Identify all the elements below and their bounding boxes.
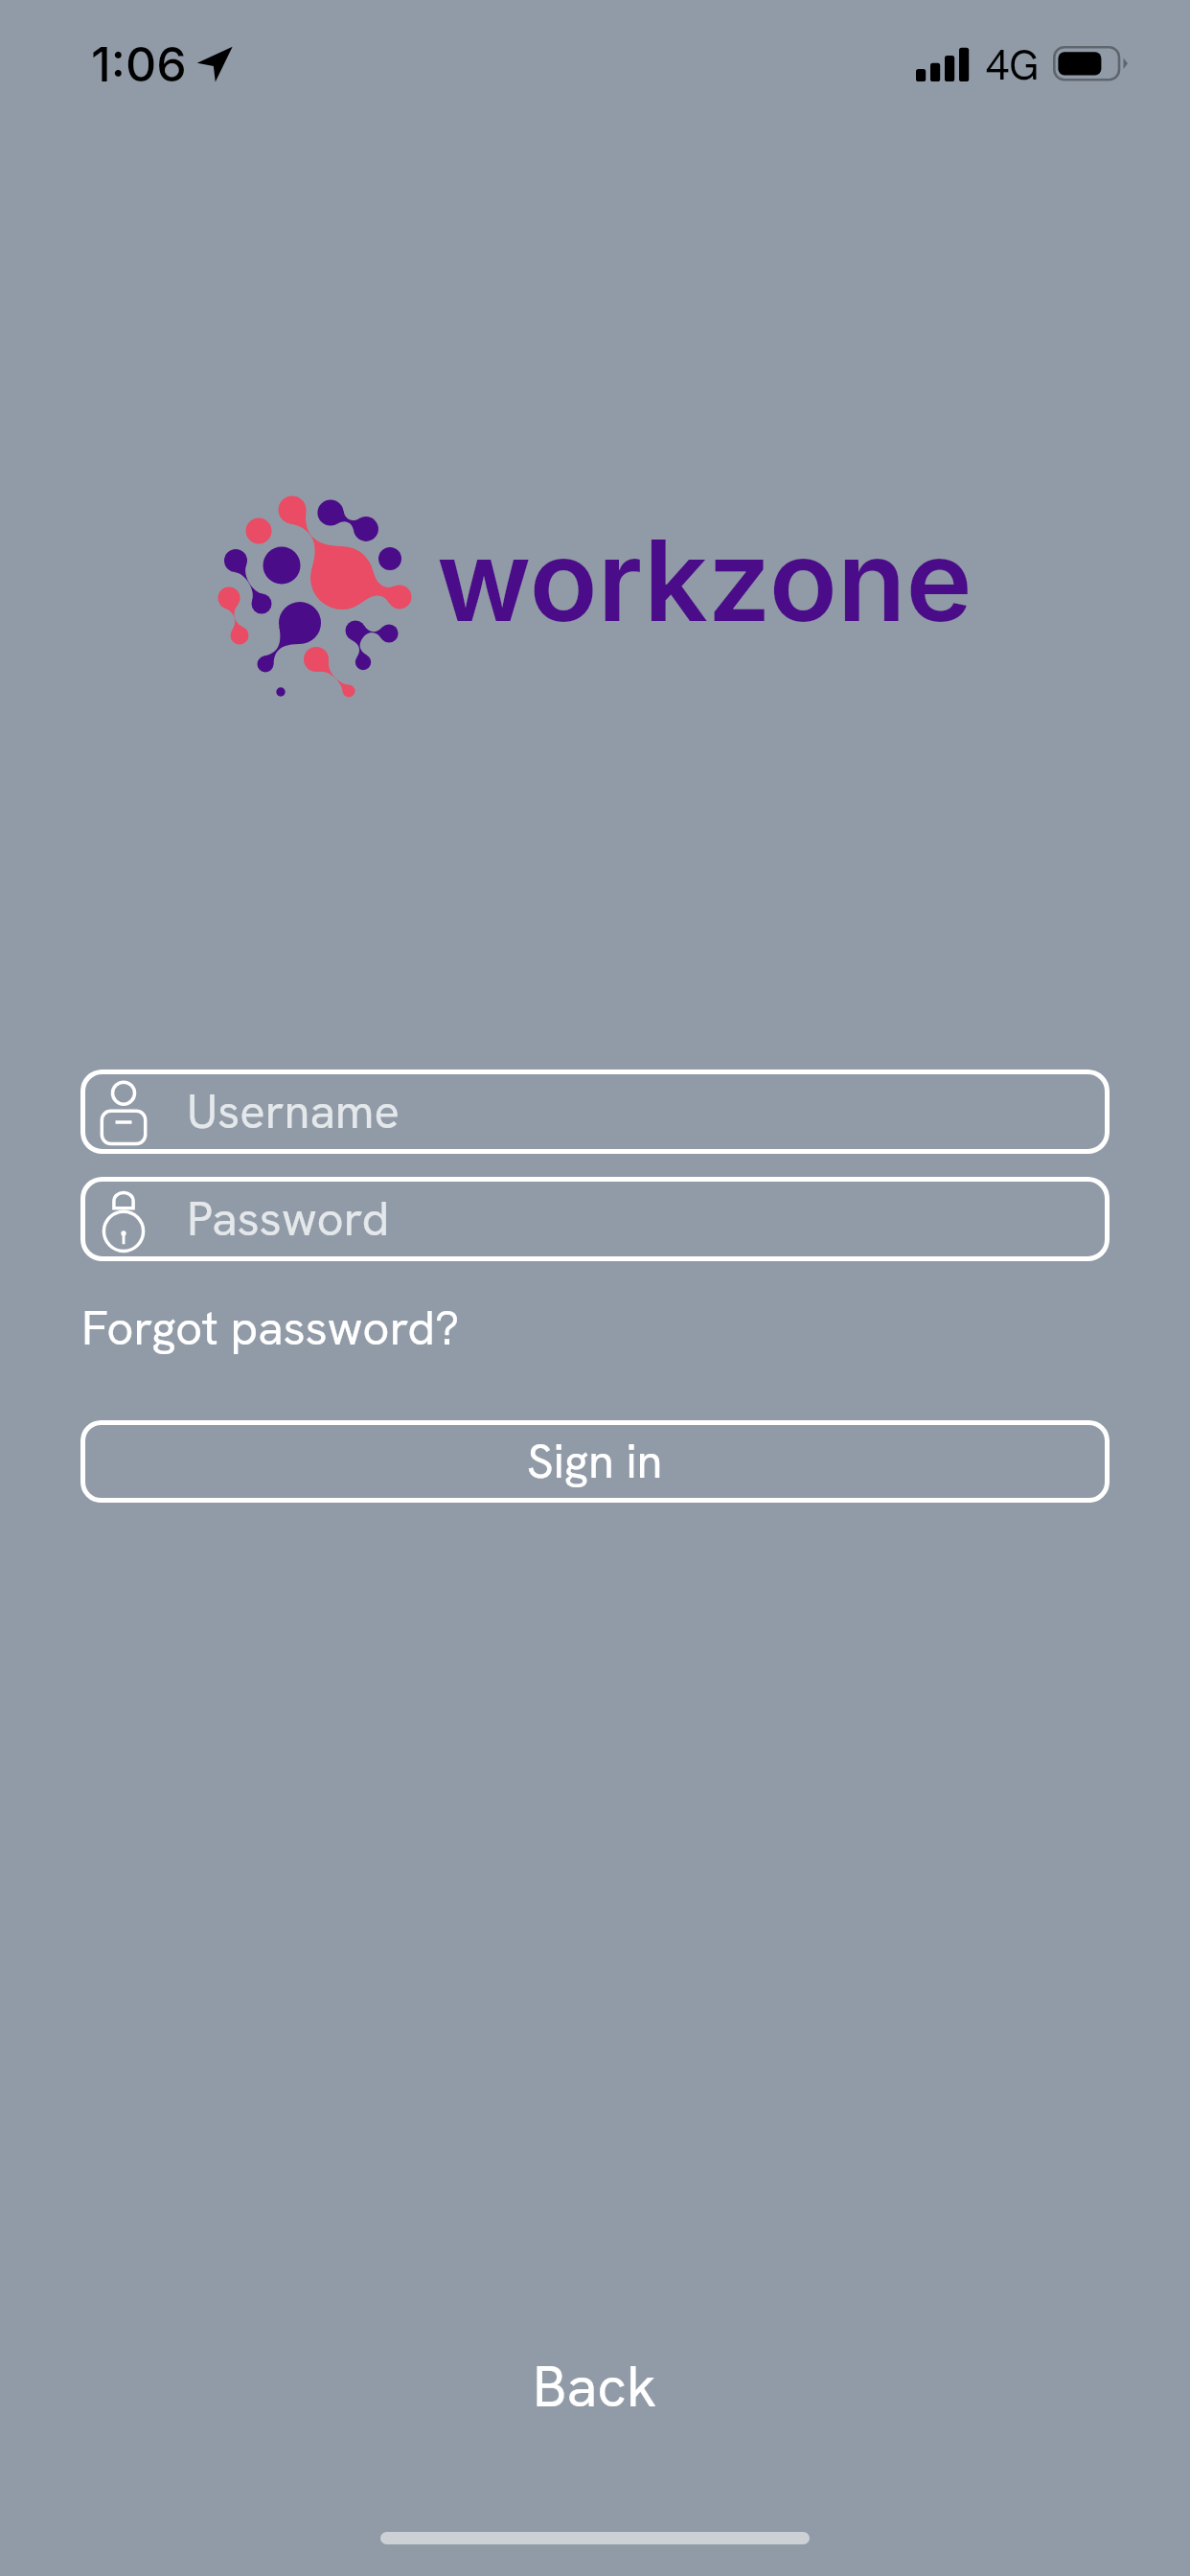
- staticText: 1:06: [91, 35, 187, 93]
- staticText: Forgot password?: [81, 1298, 460, 1359]
- button[interactable]: Username: [80, 1069, 1110, 1154]
- button[interactable]: Back: [533, 2350, 657, 2424]
- button[interactable]: Forgot password?: [81, 1298, 460, 1359]
- staticText: Username: [187, 1081, 400, 1142]
- staticText: 4G: [986, 38, 1040, 92]
- staticText: Password: [187, 1188, 390, 1250]
- staticText: Sign in: [527, 1431, 663, 1492]
- staticText: workzone: [437, 513, 973, 649]
- button[interactable]: Sign in: [80, 1420, 1110, 1503]
- staticText: Back: [533, 2350, 657, 2424]
- button[interactable]: Password: [80, 1177, 1110, 1261]
